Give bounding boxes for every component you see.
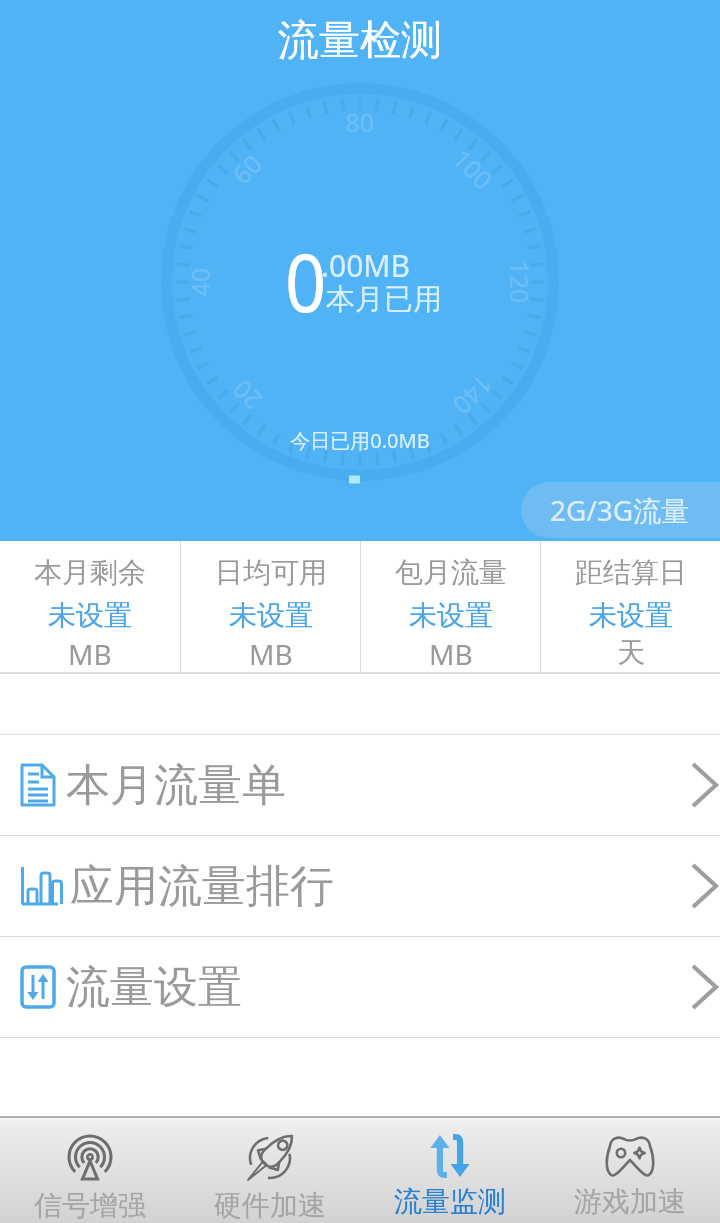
staticText: MB [68,635,112,672]
staticText: 游戏加速 [574,1184,686,1219]
staticText: 天 [617,635,645,670]
staticText: 流量检测 [0,15,720,67]
staticText: 未设置 [229,598,313,635]
staticText: 未设置 [589,598,673,635]
staticText: 应用流量排行 [70,859,334,914]
button[interactable]: 流量监测 [360,1118,540,1223]
staticText: 本月流量单 [66,758,286,813]
staticText: 流量监测 [394,1184,506,1219]
button[interactable]: 游戏加速 [540,1118,720,1223]
staticText: 未设置 [409,598,493,635]
button[interactable]: 2G/3G流量 [521,482,720,538]
staticText: 今日已用0.0MB [0,427,720,454]
staticText: 距结算日 [575,555,687,598]
button[interactable]: 本月流量单 [0,735,720,835]
button[interactable]: 硬件加速 [180,1118,360,1223]
staticText: 本月已用 [326,281,442,318]
other: 游戏加速 [604,1134,656,1178]
button[interactable]: 距结算日 [541,541,720,672]
staticText: 流量设置 [66,960,242,1015]
button[interactable]: 流量设置 [0,937,720,1037]
button[interactable]: 包月流量 [361,541,540,672]
staticText: MB [249,635,293,672]
staticText: 本月剩余 [34,555,146,598]
button[interactable]: 本月剩余 [0,541,180,672]
staticText: .00MB [321,245,411,286]
button[interactable]: 日均可用 [181,541,360,672]
other: 信号增强 [66,1134,114,1182]
other: 硬件加速 [246,1134,294,1182]
staticText: 日均可用 [215,555,327,598]
staticText: 硬件加速 [214,1188,326,1223]
button[interactable]: 应用流量排行 [0,836,720,936]
staticText: 信号增强 [34,1188,146,1223]
staticText: MB [429,635,473,672]
button[interactable]: 信号增强 [0,1118,180,1223]
staticText: 2G/3G流量 [550,491,690,529]
staticText: 未设置 [48,598,132,635]
other: 流量监测 [426,1134,474,1178]
staticText: 包月流量 [395,555,507,598]
staticText: 0 [285,226,326,335]
